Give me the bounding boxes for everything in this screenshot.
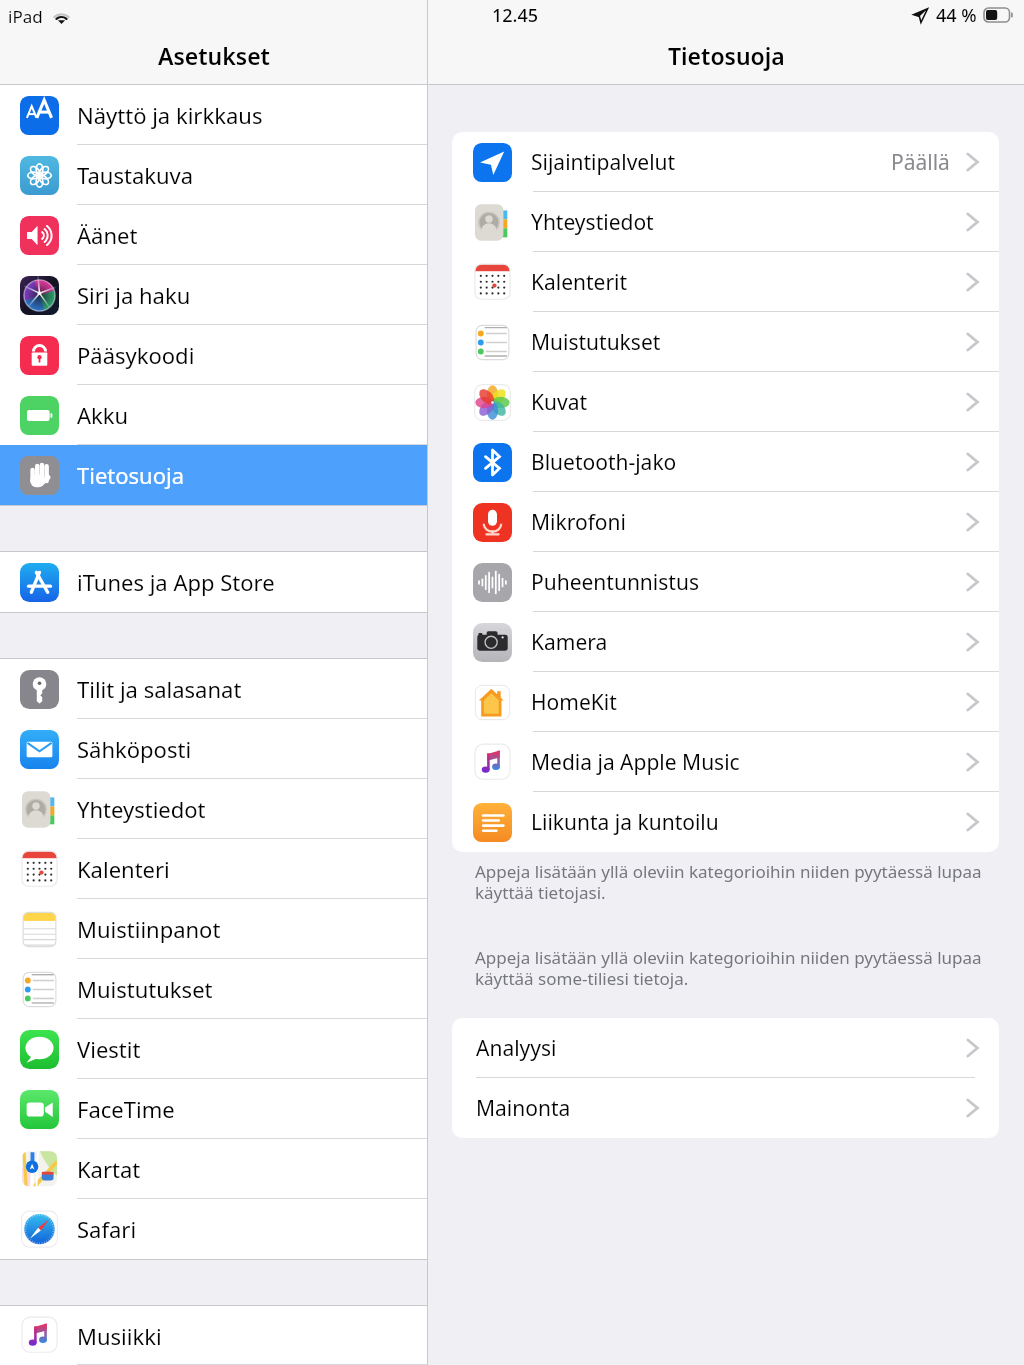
staticText: Bluetooth-jako bbox=[531, 448, 677, 477]
staticText: Päällä bbox=[891, 148, 950, 177]
staticText: Asetukset bbox=[158, 40, 270, 71]
button[interactable]: Viestit bbox=[0, 1019, 427, 1079]
button[interactable]: Safari bbox=[0, 1199, 427, 1259]
button[interactable]: Media ja Apple Music bbox=[452, 732, 999, 792]
staticText: Analyysi bbox=[476, 1034, 557, 1063]
staticText: Akku bbox=[77, 400, 129, 430]
staticText: Kamera bbox=[531, 628, 608, 657]
staticText: Viestit bbox=[77, 1034, 141, 1064]
button[interactable]: Taustakuva bbox=[0, 145, 427, 205]
button[interactable]: Mainonta bbox=[452, 1078, 999, 1138]
staticText: Muistutukset bbox=[77, 974, 213, 1004]
staticText: Pääsykoodi bbox=[77, 340, 195, 370]
button[interactable]: Siri ja haku bbox=[0, 265, 427, 325]
staticText: Näyttö ja kirkkaus bbox=[77, 100, 263, 130]
staticText: Puheentunnistus bbox=[531, 568, 699, 597]
button[interactable]: FaceTime bbox=[0, 1079, 427, 1139]
button[interactable]: Näyttö ja kirkkaus bbox=[0, 85, 427, 145]
staticText: Kartat bbox=[77, 1154, 141, 1184]
button[interactable]: Kuvat bbox=[452, 372, 999, 432]
staticText: Tietosuoja bbox=[668, 40, 785, 71]
button[interactable]: Tilit ja salasanat bbox=[0, 659, 427, 719]
button[interactable]: Liikunta ja kuntoilu bbox=[452, 792, 999, 852]
button[interactable]: Mikrofoni bbox=[452, 492, 999, 552]
staticText: Liikunta ja kuntoilu bbox=[531, 808, 719, 837]
staticText: HomeKit bbox=[531, 688, 617, 717]
button[interactable]: Kalenteri bbox=[0, 839, 427, 899]
staticText: Mainonta bbox=[476, 1094, 571, 1123]
staticText: Kuvat bbox=[531, 388, 588, 417]
button[interactable]: HomeKit bbox=[452, 672, 999, 732]
button[interactable]: iTunes ja App Store bbox=[0, 552, 427, 612]
staticText: Kalenteri bbox=[77, 854, 170, 884]
staticText: Kalenterit bbox=[531, 268, 628, 297]
staticText: Musiikki bbox=[77, 1321, 162, 1351]
staticText: Media ja Apple Music bbox=[531, 748, 740, 777]
button[interactable]: Yhteystiedot bbox=[452, 192, 999, 252]
button[interactable]: Kalenterit bbox=[452, 252, 999, 312]
button[interactable]: Puheentunnistus bbox=[452, 552, 999, 612]
button[interactable]: Muistiinpanot bbox=[0, 899, 427, 959]
staticText: Muistiinpanot bbox=[77, 914, 221, 944]
button[interactable]: Tietosuoja bbox=[0, 445, 427, 505]
staticText: FaceTime bbox=[77, 1094, 175, 1124]
button[interactable]: Muistutukset bbox=[452, 312, 999, 372]
staticText: 12.45 bbox=[492, 3, 539, 28]
button[interactable]: Kamera bbox=[452, 612, 999, 672]
button[interactable]: Kartat bbox=[0, 1139, 427, 1199]
staticText: Taustakuva bbox=[77, 160, 194, 190]
staticText: Sijaintipalvelut bbox=[531, 148, 676, 177]
button[interactable]: Musiikki bbox=[0, 1306, 427, 1365]
button[interactable]: Sijaintipalvelut bbox=[452, 132, 999, 192]
staticText: Safari bbox=[77, 1214, 137, 1244]
staticText: Appeja lisätään yllä oleviin kategorioih… bbox=[475, 860, 982, 904]
staticText: Siri ja haku bbox=[77, 280, 191, 310]
staticText: Mikrofoni bbox=[531, 508, 626, 537]
staticText: 44 % bbox=[936, 3, 977, 28]
staticText: Tietosuoja bbox=[77, 460, 185, 490]
staticText: iTunes ja App Store bbox=[77, 567, 275, 597]
staticText: Tilit ja salasanat bbox=[77, 674, 242, 704]
staticText: Sähköposti bbox=[77, 734, 192, 764]
staticText: Yhteystiedot bbox=[77, 794, 206, 824]
staticText: Appeja lisätään yllä oleviin kategorioih… bbox=[475, 946, 982, 990]
button[interactable]: Akku bbox=[0, 385, 427, 445]
button[interactable]: Analyysi bbox=[452, 1018, 999, 1078]
button[interactable]: Bluetooth-jako bbox=[452, 432, 999, 492]
staticText: iPad bbox=[8, 5, 43, 28]
staticText: Yhteystiedot bbox=[531, 208, 654, 237]
staticText: Äänet bbox=[77, 220, 138, 250]
staticText: Muistutukset bbox=[531, 328, 661, 357]
button[interactable]: Äänet bbox=[0, 205, 427, 265]
button[interactable]: Sähköposti bbox=[0, 719, 427, 779]
button[interactable]: Pääsykoodi bbox=[0, 325, 427, 385]
button[interactable]: Muistutukset bbox=[0, 959, 427, 1019]
button[interactable]: Yhteystiedot bbox=[0, 779, 427, 839]
